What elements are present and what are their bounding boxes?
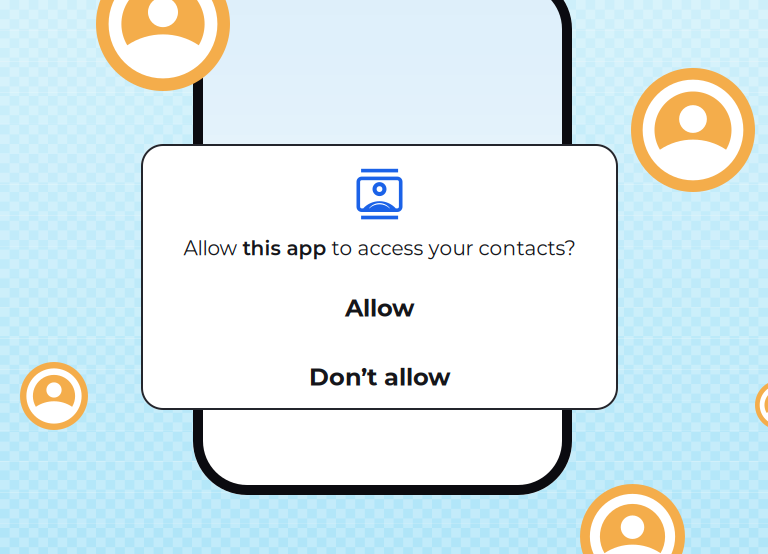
button[interactable]: Don’t allow — [141, 360, 618, 394]
button[interactable]: Allow — [141, 291, 618, 325]
staticText: Allow this app to access your contacts? — [183, 236, 575, 260]
staticText: Allow — [345, 293, 414, 323]
staticText: Don’t allow — [309, 362, 450, 392]
